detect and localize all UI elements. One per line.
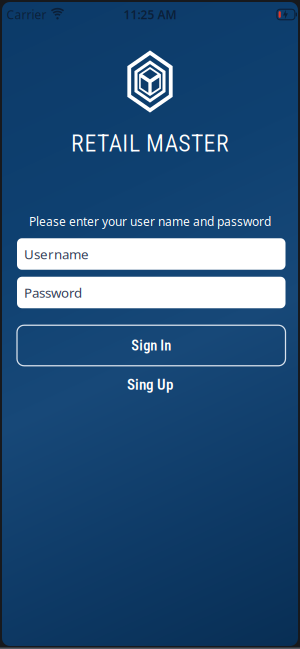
staticText: RETAIL MASTER (71, 129, 229, 157)
staticText: 11:25 AM (123, 6, 176, 22)
staticText: Please enter your user name and password (29, 213, 271, 229)
button[interactable]: Sign In (17, 325, 285, 366)
button[interactable]: Username (17, 238, 285, 270)
staticText: Username (24, 245, 89, 263)
staticText: Carrier (6, 6, 46, 22)
staticText: Password (24, 284, 82, 301)
button[interactable]: Sing Up (107, 371, 193, 398)
staticText: Sign In (131, 337, 171, 354)
button[interactable]: Password (17, 277, 285, 308)
staticText: Sing Up (127, 376, 173, 393)
